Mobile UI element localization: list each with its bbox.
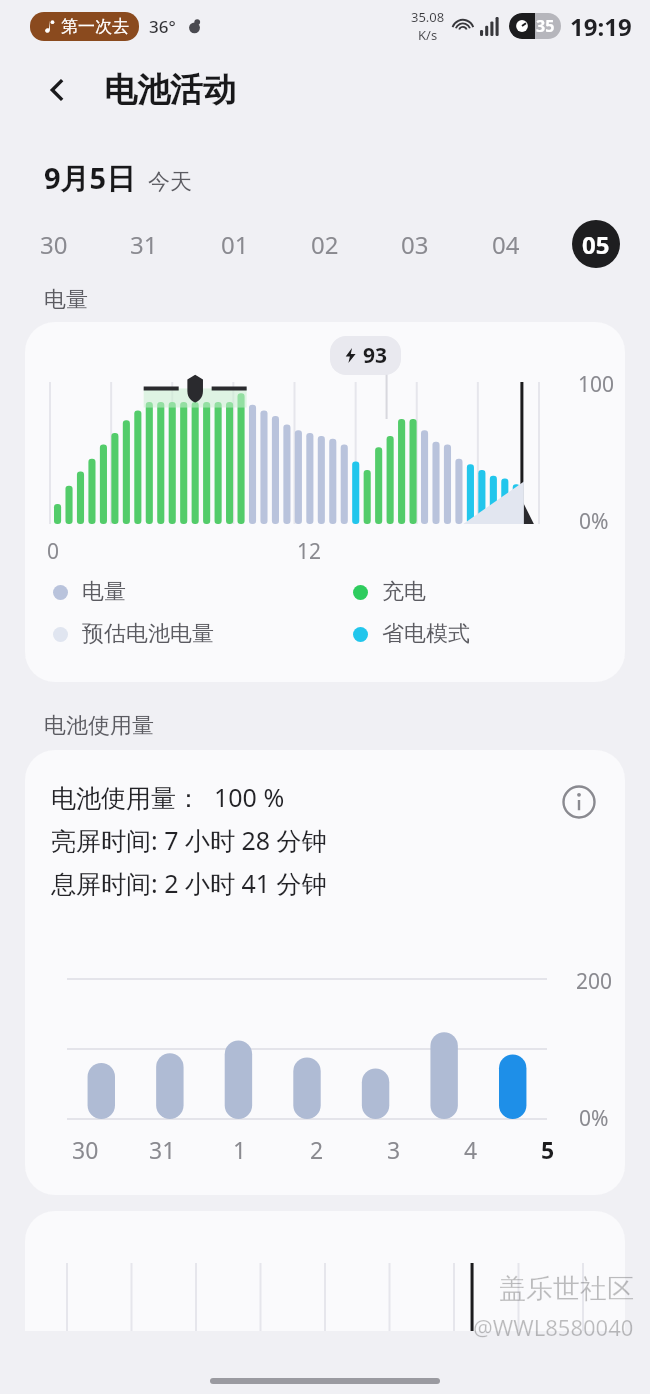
button[interactable]: 30	[30, 220, 78, 268]
button[interactable]: 电池使用量： 100 %	[25, 750, 625, 1195]
staticText: 0	[47, 537, 60, 566]
button[interactable]: 省电模式	[353, 620, 470, 648]
button[interactable]: 05	[572, 220, 620, 268]
staticText: 电量	[44, 286, 88, 314]
button[interactable]: 02	[301, 220, 349, 268]
button[interactable]: 04	[482, 220, 530, 268]
staticText: 盖乐世社区	[499, 1272, 634, 1306]
staticText: 亮屏时间: 7 小时 28 分钟	[51, 823, 327, 857]
staticText: 省电模式	[382, 620, 470, 648]
button[interactable]: 03	[391, 220, 439, 268]
staticText: 03	[401, 228, 429, 261]
staticText: 04	[492, 228, 520, 261]
staticText: K/s	[418, 26, 438, 44]
staticText: 19:19	[570, 10, 632, 43]
staticText: 36°	[149, 15, 176, 38]
button[interactable]: 充电	[353, 578, 426, 606]
staticText: 31	[130, 228, 158, 261]
staticText: 0%	[579, 1104, 609, 1133]
staticText: 100	[578, 370, 615, 399]
staticText: 01	[221, 228, 249, 261]
staticText: 31	[149, 1134, 176, 1165]
staticText: 5	[541, 1134, 555, 1165]
staticText: 今天	[148, 168, 192, 196]
staticText: 3	[387, 1134, 401, 1165]
staticText: 电池使用量	[44, 712, 154, 740]
staticText: 35	[536, 15, 555, 37]
button[interactable]: 93	[25, 322, 625, 682]
button[interactable]: Info	[557, 780, 601, 824]
button[interactable]: 电量	[53, 578, 353, 606]
staticText: 1	[233, 1134, 247, 1165]
staticText: @WWL8580040	[473, 1312, 634, 1342]
staticText: 35.08	[411, 8, 445, 26]
button[interactable]: Back	[36, 68, 80, 112]
staticText: 电池使用量： 100 %	[51, 780, 285, 814]
button[interactable]	[25, 1211, 625, 1331]
staticText: 预估电池电量	[82, 620, 214, 648]
staticText: 12	[297, 537, 322, 566]
staticText: 0%	[579, 507, 609, 536]
staticText: 电池活动	[104, 69, 236, 111]
button[interactable]: 31	[120, 220, 168, 268]
staticText: 93	[363, 341, 388, 370]
button[interactable]: 01	[211, 220, 259, 268]
staticText: 02	[311, 228, 339, 261]
staticText: 电量	[82, 578, 126, 606]
staticText: 30	[72, 1134, 99, 1165]
staticText: 9月5日	[44, 158, 136, 198]
staticText: 息屏时间: 2 小时 41 分钟	[51, 866, 327, 900]
button[interactable]: 预估电池电量	[53, 620, 353, 648]
staticText: 05	[582, 228, 610, 261]
staticText: 充电	[382, 578, 426, 606]
staticText: 30	[40, 228, 68, 261]
staticText: 4	[464, 1134, 478, 1165]
staticText: 第一次去	[61, 16, 129, 37]
staticText: 200	[576, 967, 613, 996]
staticText: 2	[310, 1134, 324, 1165]
